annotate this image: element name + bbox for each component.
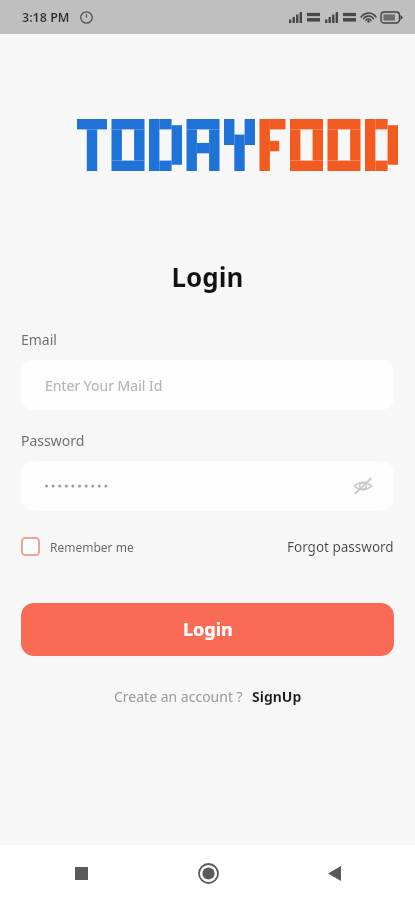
staticText: SignUp [252,687,302,706]
button[interactable]: Enter Your Mail Id [21,360,394,410]
button[interactable]: SignUp [252,687,302,706]
staticText: Forgot password [287,538,394,556]
staticText: Remember me [50,539,134,555]
staticText: Login [183,617,233,642]
staticText: Email [21,330,57,349]
button[interactable]: Show password [21,461,394,511]
staticText: Login [0,259,415,294]
button[interactable]: Show password [346,469,380,503]
staticText: Password [21,431,85,450]
staticText: Create an account ? [114,687,243,706]
staticText: Enter Your Mail Id [45,376,163,395]
button[interactable]: Forgot password [287,538,394,556]
button[interactable]: Back [311,850,357,896]
button[interactable]: Home [185,850,231,896]
button[interactable]: Recent apps [58,850,104,896]
button[interactable]: Remember me [21,537,134,556]
button[interactable]: Login [21,603,394,656]
staticText: 3:18 PM [22,9,70,26]
